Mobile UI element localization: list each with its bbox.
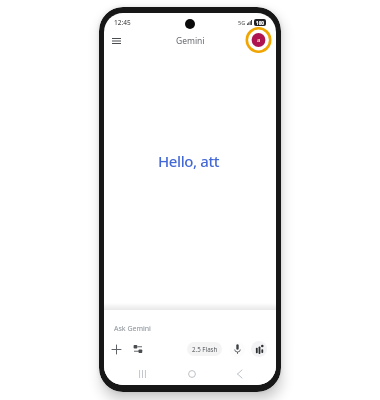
staticText: 100 (256, 20, 264, 26)
button[interactable]: 2.5 Flash (187, 342, 222, 356)
button[interactable]: Home (183, 365, 200, 382)
button[interactable]: Microphone (230, 342, 245, 357)
button[interactable]: Add (108, 341, 124, 357)
button[interactable]: Recents (134, 365, 151, 382)
button[interactable]: Back (231, 365, 248, 382)
button[interactable]: Account (245, 27, 272, 53)
staticText: Ask Gemini (114, 324, 151, 334)
button[interactable]: Menu (107, 32, 125, 50)
staticText: 2.5 Flash (192, 345, 218, 353)
staticText: 12:45 (114, 18, 131, 27)
button[interactable]: Tools (130, 341, 146, 357)
staticText: a (257, 36, 261, 44)
staticText: 5G (238, 19, 246, 26)
staticText: Gemini (176, 35, 205, 47)
button[interactable]: Gemini Live (251, 341, 267, 357)
staticText: Hello, att (158, 151, 220, 171)
